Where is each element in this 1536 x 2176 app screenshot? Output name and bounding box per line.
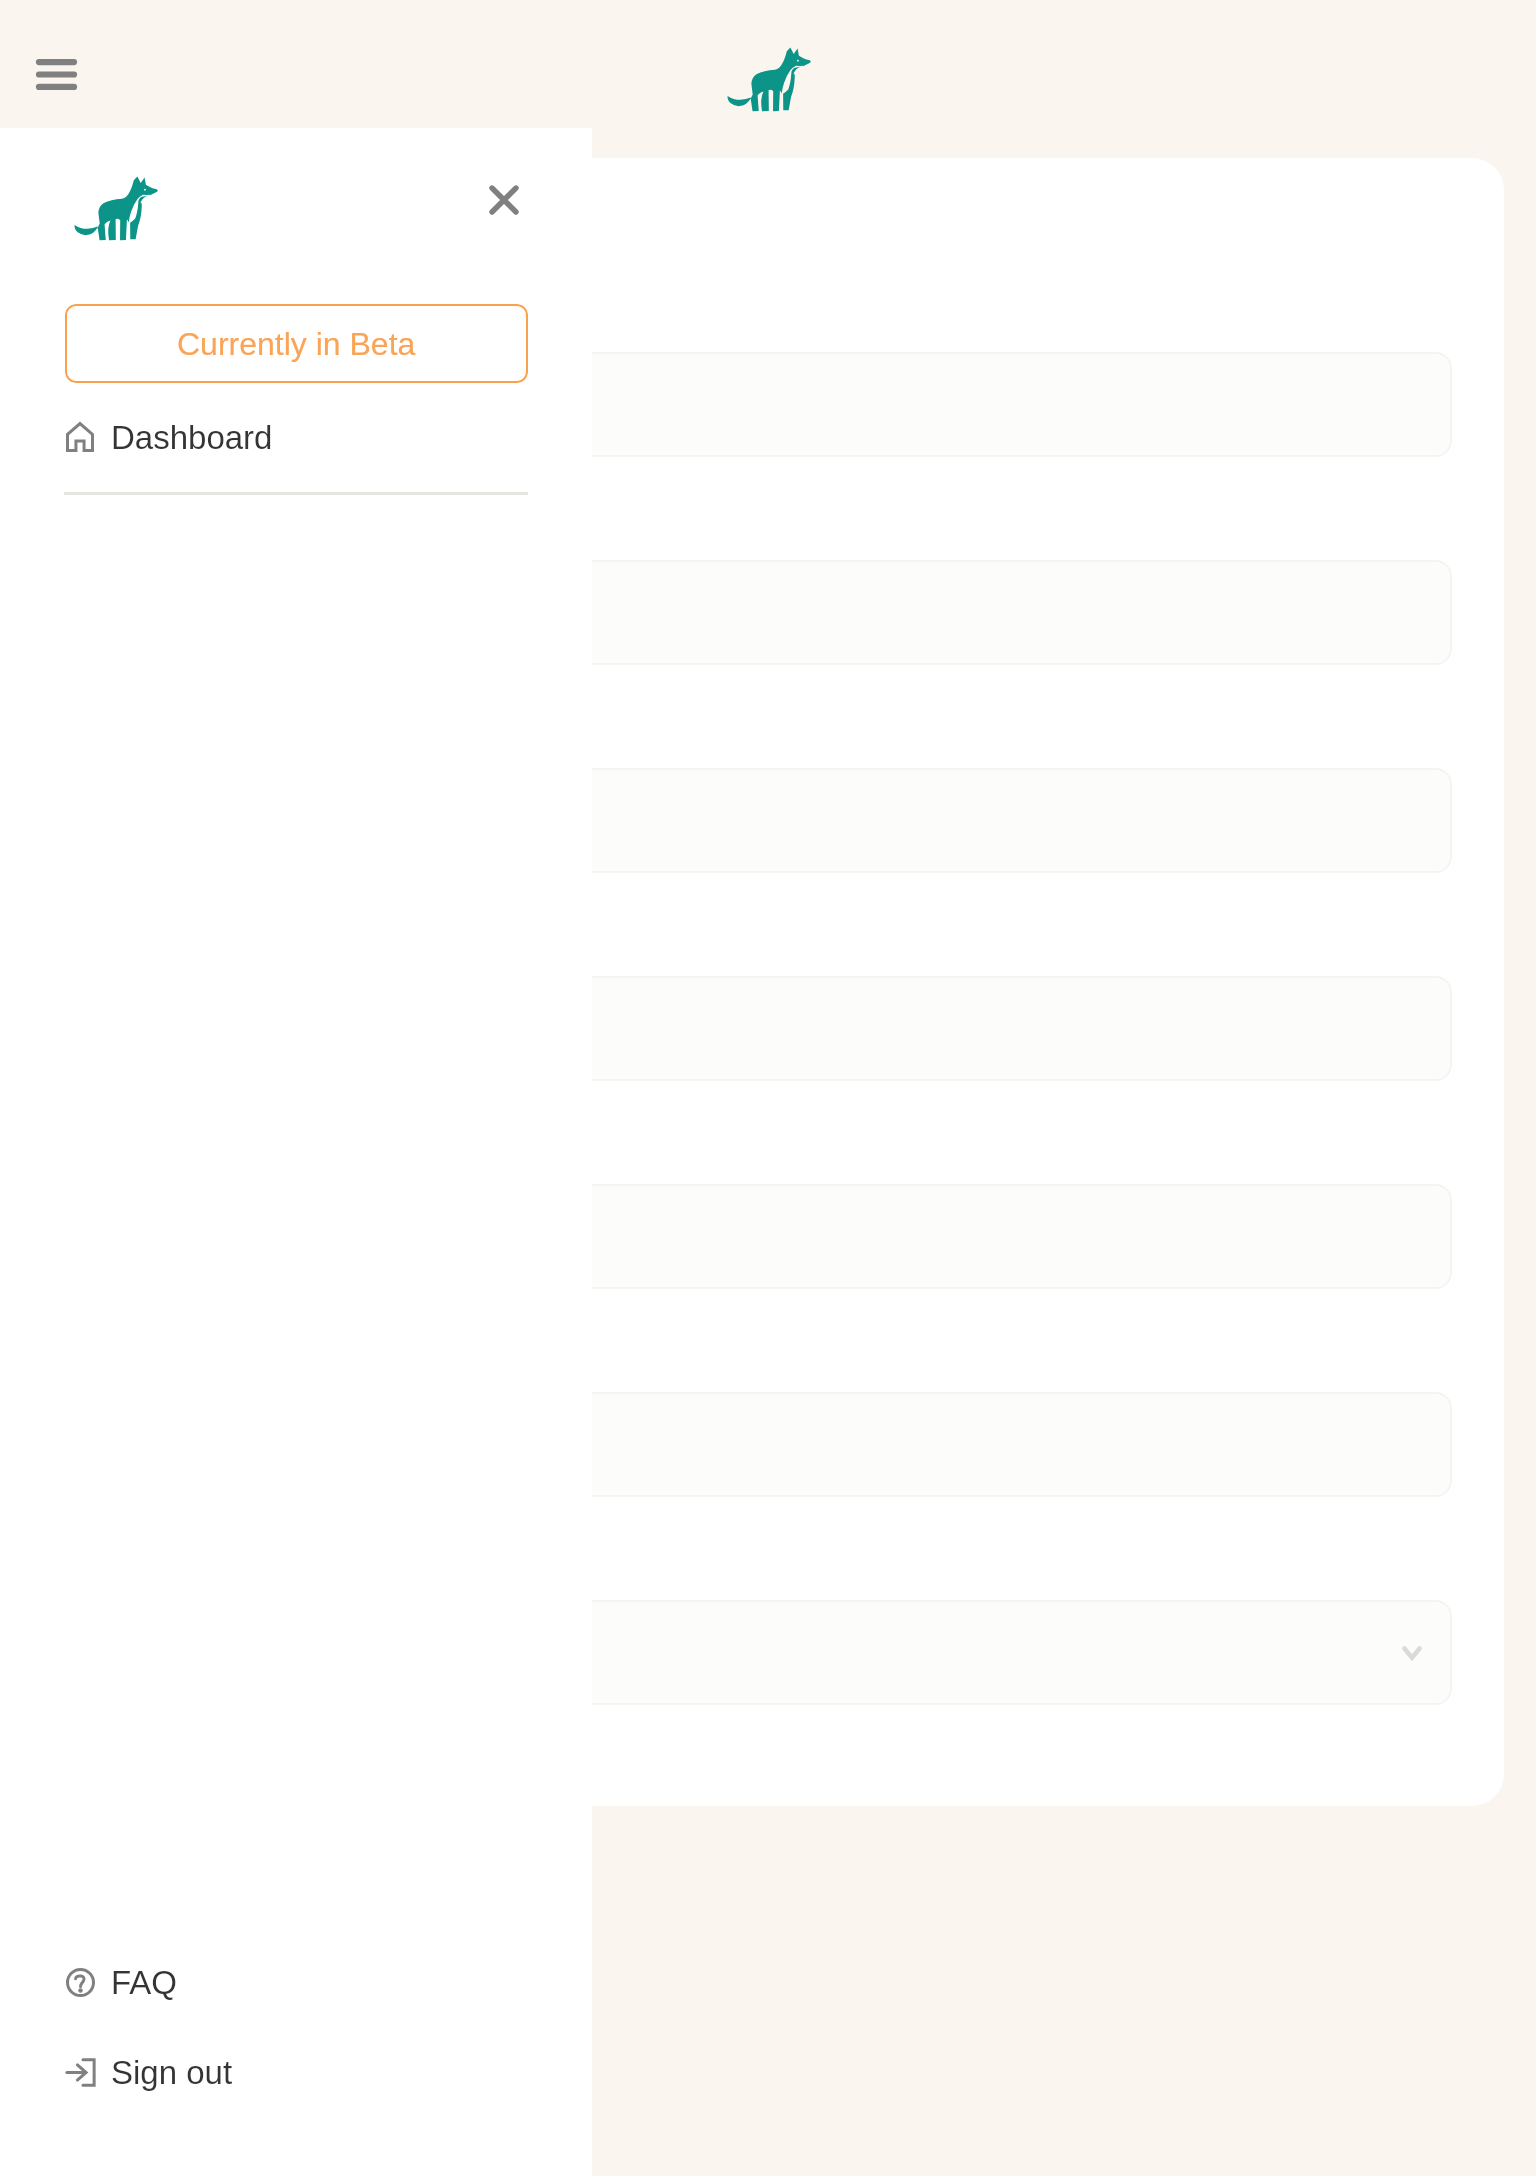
staticText: FAQ bbox=[111, 1964, 178, 2001]
button[interactable]: Close navigation menu bbox=[464, 160, 544, 240]
button[interactable]: Dashboard bbox=[0, 402, 592, 472]
button[interactable]: Open navigation menu bbox=[16, 34, 96, 114]
button[interactable]: FAQ bbox=[0, 1948, 592, 2016]
button[interactable] bbox=[520, 352, 1452, 457]
button[interactable]: Currently in Beta bbox=[65, 304, 528, 383]
staticText: Sign out bbox=[111, 2054, 233, 2091]
staticText: Currently in Beta bbox=[177, 326, 416, 362]
button[interactable]: Sign out bbox=[0, 2038, 592, 2106]
staticText: Dashboard bbox=[111, 419, 273, 456]
